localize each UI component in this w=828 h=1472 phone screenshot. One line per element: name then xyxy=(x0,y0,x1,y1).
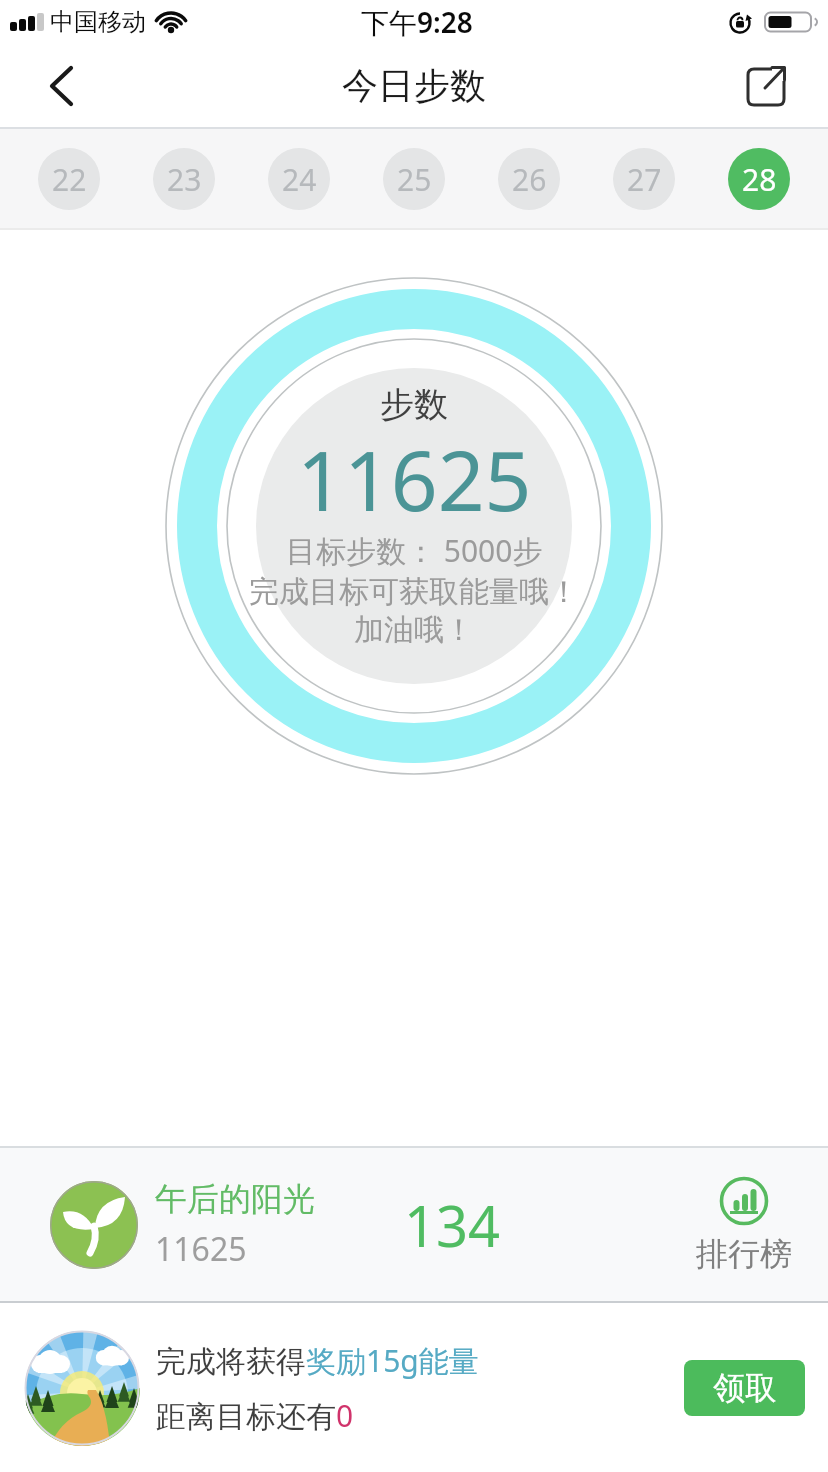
staticText: 中国移动 xyxy=(50,7,146,37)
button[interactable]: 领取 xyxy=(684,1360,805,1416)
staticText: 24 xyxy=(282,159,317,200)
button[interactable]: 24 xyxy=(268,148,330,210)
button[interactable]: 27 xyxy=(613,148,675,210)
button[interactable]: 23 xyxy=(153,148,215,210)
staticText: 完成将获得奖励15g能量 xyxy=(156,1340,479,1381)
staticText: 23 xyxy=(167,159,202,200)
staticText: 28 xyxy=(742,159,777,200)
staticText: 距离目标还有0 xyxy=(156,1395,354,1436)
staticText: 排行榜 xyxy=(696,1234,792,1274)
button[interactable] xyxy=(742,62,790,110)
staticText: 领取 xyxy=(713,1368,777,1408)
staticText: 27 xyxy=(627,159,662,200)
staticText: 22 xyxy=(52,159,87,200)
staticText: 25 xyxy=(397,159,432,200)
button[interactable]: 26 xyxy=(498,148,560,210)
button[interactable] xyxy=(40,64,84,108)
staticText: 加油哦！ xyxy=(354,611,474,649)
staticText: 目标步数： 5000步 xyxy=(286,530,543,571)
button[interactable]: 排行榜 xyxy=(696,1176,792,1274)
staticText: 今日步数 xyxy=(342,63,486,108)
staticText: 26 xyxy=(512,159,547,200)
button[interactable]: 25 xyxy=(383,148,445,210)
staticText: 午后的阳光 xyxy=(155,1179,315,1219)
staticText: 完成目标可获取能量哦！ xyxy=(249,573,579,611)
staticText: 下午9:28 xyxy=(361,3,473,41)
staticText: 11625 xyxy=(297,423,532,535)
button[interactable]: 28 xyxy=(728,148,790,210)
staticText: 11625 xyxy=(155,1227,247,1271)
staticText: 步数 xyxy=(380,383,448,426)
button[interactable]: 午后的阳光 xyxy=(0,1148,828,1301)
staticText: 134 xyxy=(404,1187,501,1263)
button[interactable]: 22 xyxy=(38,148,100,210)
